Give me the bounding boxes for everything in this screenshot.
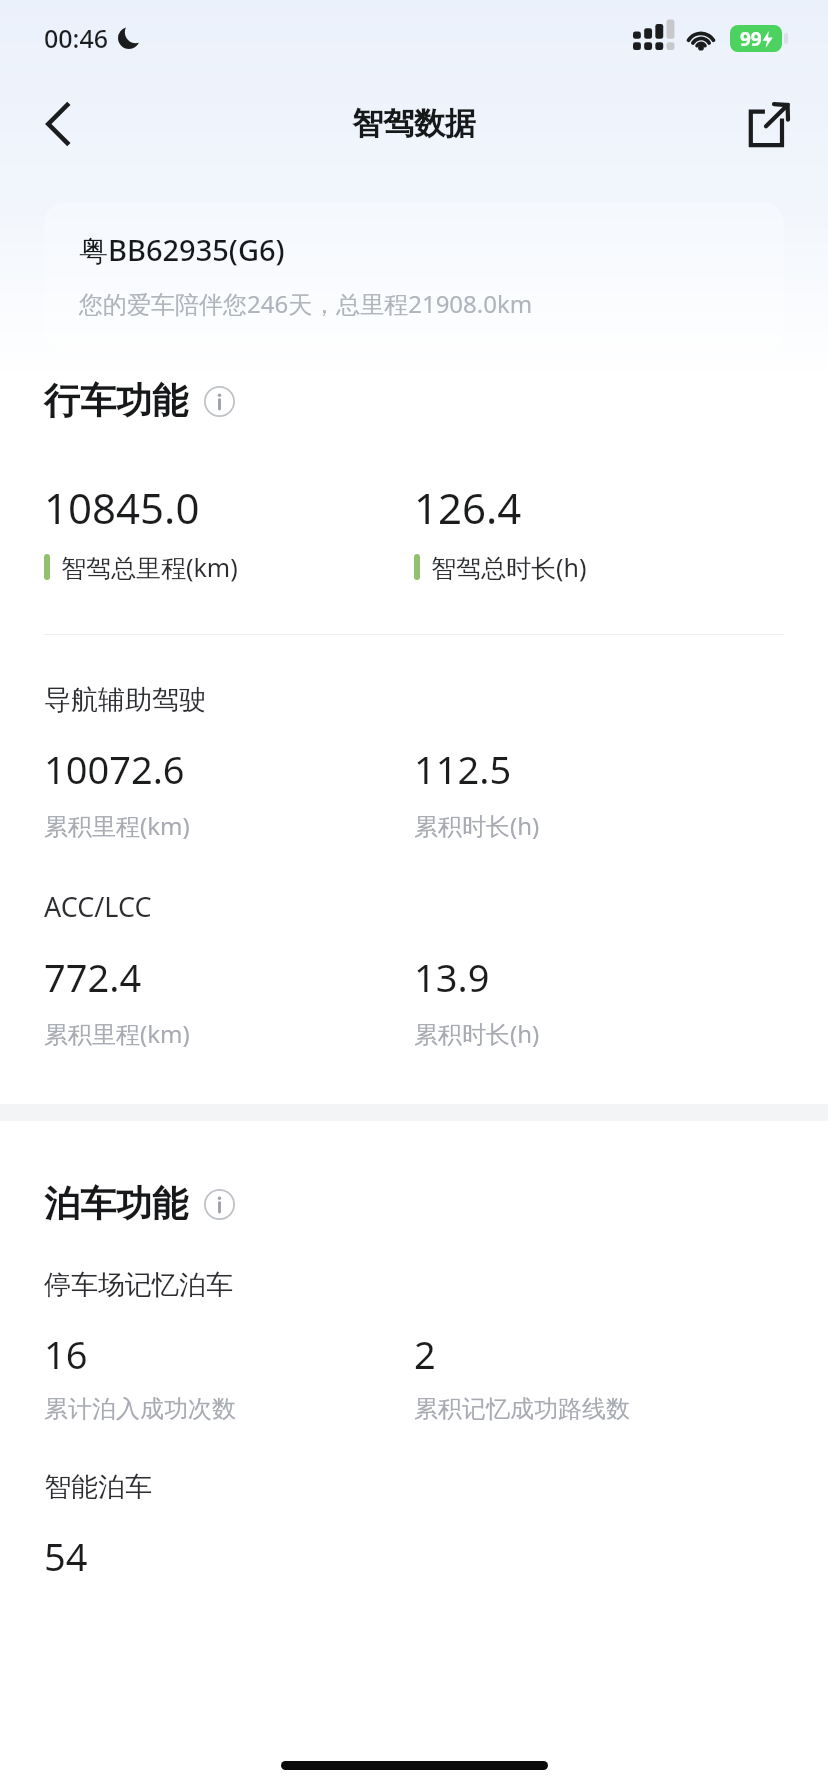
staticText: 您的爱车陪伴您246天，总里程21908.0km [79,287,533,320]
staticText: 累计泊入成功次数 [44,1394,236,1424]
staticText: 智驾总里程(km) [61,550,238,584]
staticText: 累积里程(km) [44,1017,190,1050]
staticText: 行车功能 [44,378,188,423]
button[interactable]: Back [26,92,90,156]
staticText: 10072.6 [44,743,185,795]
button[interactable]: 行车功能 [44,378,784,423]
staticText: 累积时长(h) [414,809,540,842]
staticText: 16 [44,1328,88,1380]
staticText: 10845.0 [44,479,200,536]
staticText: 智驾总时长(h) [431,550,587,584]
staticText: ACC/LCC [44,888,152,925]
staticText: 累积记忆成功路线数 [414,1394,630,1424]
staticText: 停车场记忆泊车 [44,1268,233,1302]
staticText: 智驾数据 [352,104,476,143]
button[interactable]: 粤BB62935(G6) [44,202,784,352]
staticText: 累积时长(h) [414,1017,540,1050]
staticText: 13.9 [414,951,490,1003]
staticText: 126.4 [414,479,522,536]
other: Info [202,1187,236,1221]
button[interactable]: Share [738,92,802,156]
staticText: 泊车功能 [44,1181,188,1226]
button[interactable]: 泊车功能 [44,1181,784,1226]
staticText: 智能泊车 [44,1470,152,1504]
staticText: 54 [44,1530,88,1582]
staticText: 00:46 [44,21,109,55]
staticText: 导航辅助驾驶 [44,683,206,717]
staticText: 112.5 [414,743,512,795]
staticText: 粤BB62935(G6) [79,230,285,270]
other: Info [202,384,236,418]
staticText: 累积里程(km) [44,809,190,842]
staticText: 2 [414,1328,436,1380]
staticText: 772.4 [44,951,142,1003]
staticText: 99 [740,26,762,52]
